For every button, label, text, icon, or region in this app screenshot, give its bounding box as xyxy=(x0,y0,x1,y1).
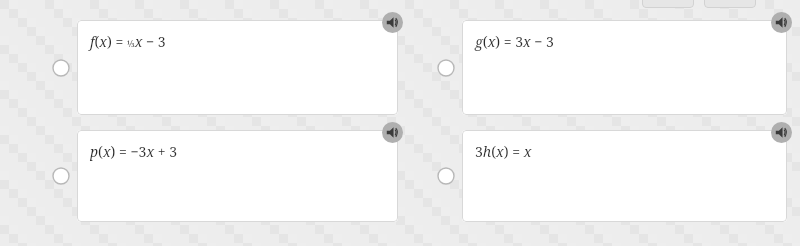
staticText: g(x) = 3x − 3 xyxy=(475,32,554,51)
button[interactable]: Play audio xyxy=(382,12,403,33)
button[interactable]: Select answer xyxy=(437,59,455,77)
button[interactable]: f(x) = 1⁄3x − 3 xyxy=(77,20,398,115)
button[interactable]: g(x) = 3x − 3 xyxy=(462,20,787,115)
button[interactable]: Select answer xyxy=(437,167,455,185)
button[interactable]: Toolbar button xyxy=(642,0,694,8)
button[interactable]: Toolbar button xyxy=(704,0,756,8)
staticText: p(x) = −3x + 3 xyxy=(90,142,178,161)
button[interactable]: Play audio xyxy=(771,122,792,143)
button[interactable]: Play audio xyxy=(382,122,403,143)
button[interactable]: Select answer xyxy=(52,167,70,185)
button[interactable]: p(x) = −3x + 3 xyxy=(77,130,398,222)
staticText: f(x) = 1⁄3x − 3 xyxy=(90,32,166,51)
button[interactable]: Select answer xyxy=(52,59,70,77)
staticText: 3h(x) = x xyxy=(475,142,532,161)
button[interactable]: 3h(x) = x xyxy=(462,130,787,222)
button[interactable]: Play audio xyxy=(771,12,792,33)
